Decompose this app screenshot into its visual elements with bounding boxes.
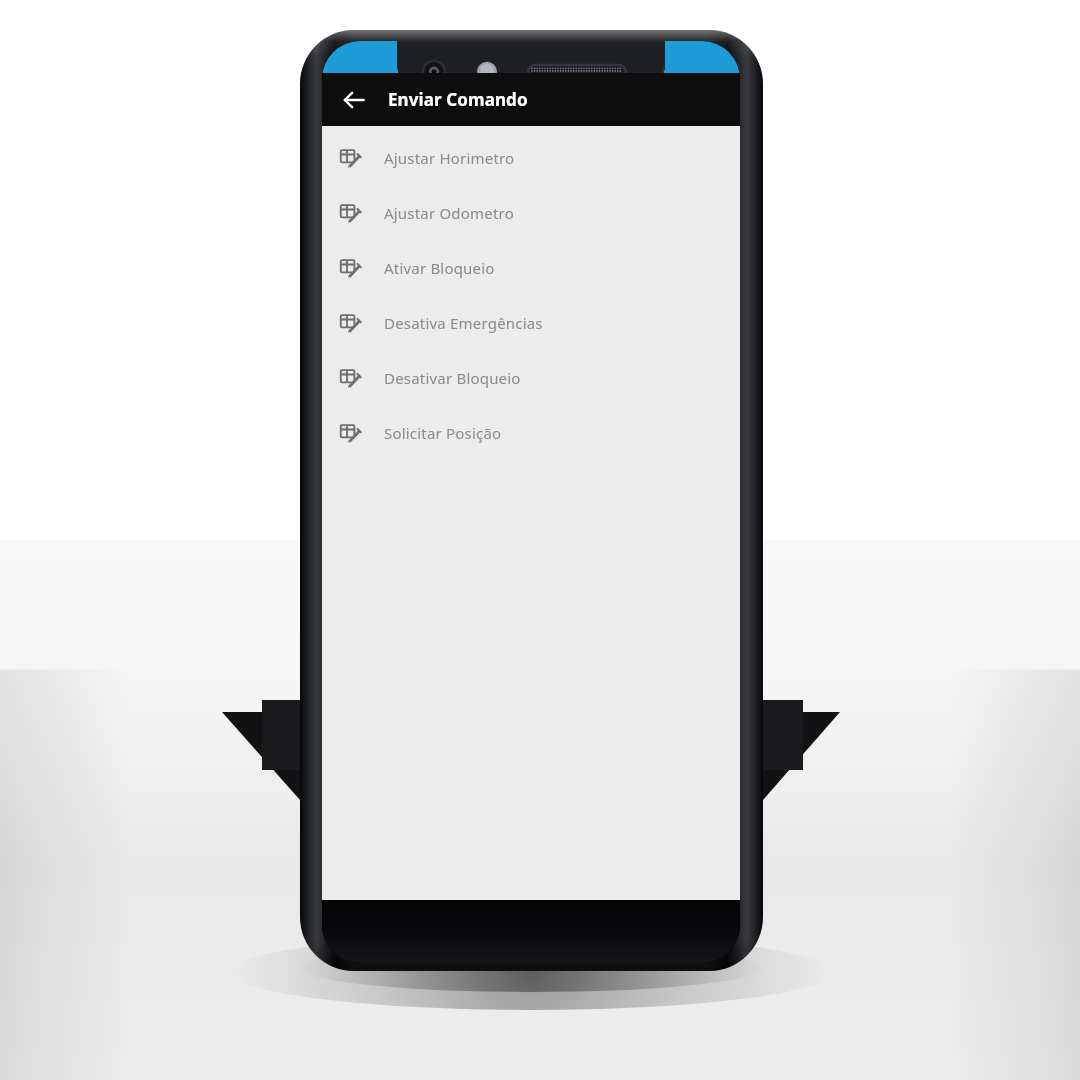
staticText: Enviar Comando	[388, 88, 528, 111]
button[interactable]: Solicitar Posição	[322, 405, 740, 460]
button[interactable]: Desativar Bloqueio	[322, 350, 740, 405]
staticText: Ajustar Odometro	[384, 203, 514, 223]
button[interactable]: Ajustar Odometro	[322, 185, 740, 240]
staticText: Desativar Bloqueio	[384, 368, 521, 388]
staticText: Solicitar Posição	[384, 423, 502, 443]
button[interactable]: Desativa Emergências	[322, 295, 740, 350]
staticText: Ajustar Horimetro	[384, 148, 515, 168]
staticText: Desativa Emergências	[384, 313, 543, 333]
button[interactable]: Ajustar Horimetro	[322, 130, 740, 185]
staticText: Ativar Bloqueio	[384, 258, 495, 278]
button[interactable]: Voltar	[336, 82, 372, 118]
button[interactable]: Ativar Bloqueio	[322, 240, 740, 295]
